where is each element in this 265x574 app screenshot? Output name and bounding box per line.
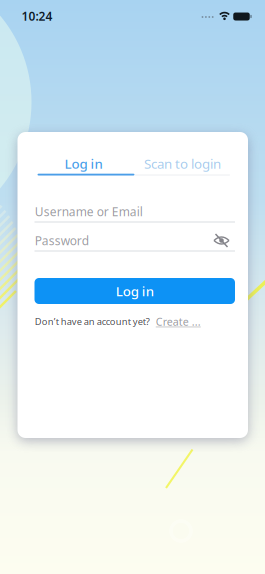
button[interactable]: Log in bbox=[34, 278, 235, 304]
staticText: Username or Email bbox=[35, 203, 143, 219]
button[interactable]: Create ... bbox=[156, 314, 201, 329]
staticText: Log in bbox=[116, 282, 154, 300]
staticText: Scan to login bbox=[144, 155, 221, 172]
staticText: Log in bbox=[64, 155, 102, 172]
button[interactable]: Log in bbox=[35, 150, 132, 176]
staticText: 10:24 bbox=[21, 8, 52, 24]
staticText: Don’t have an account yet? bbox=[35, 315, 150, 328]
staticText: Password bbox=[35, 232, 89, 248]
button[interactable]: Show password bbox=[210, 230, 232, 250]
staticText: Create ... bbox=[156, 314, 201, 329]
button[interactable]: Scan to login bbox=[135, 150, 230, 176]
